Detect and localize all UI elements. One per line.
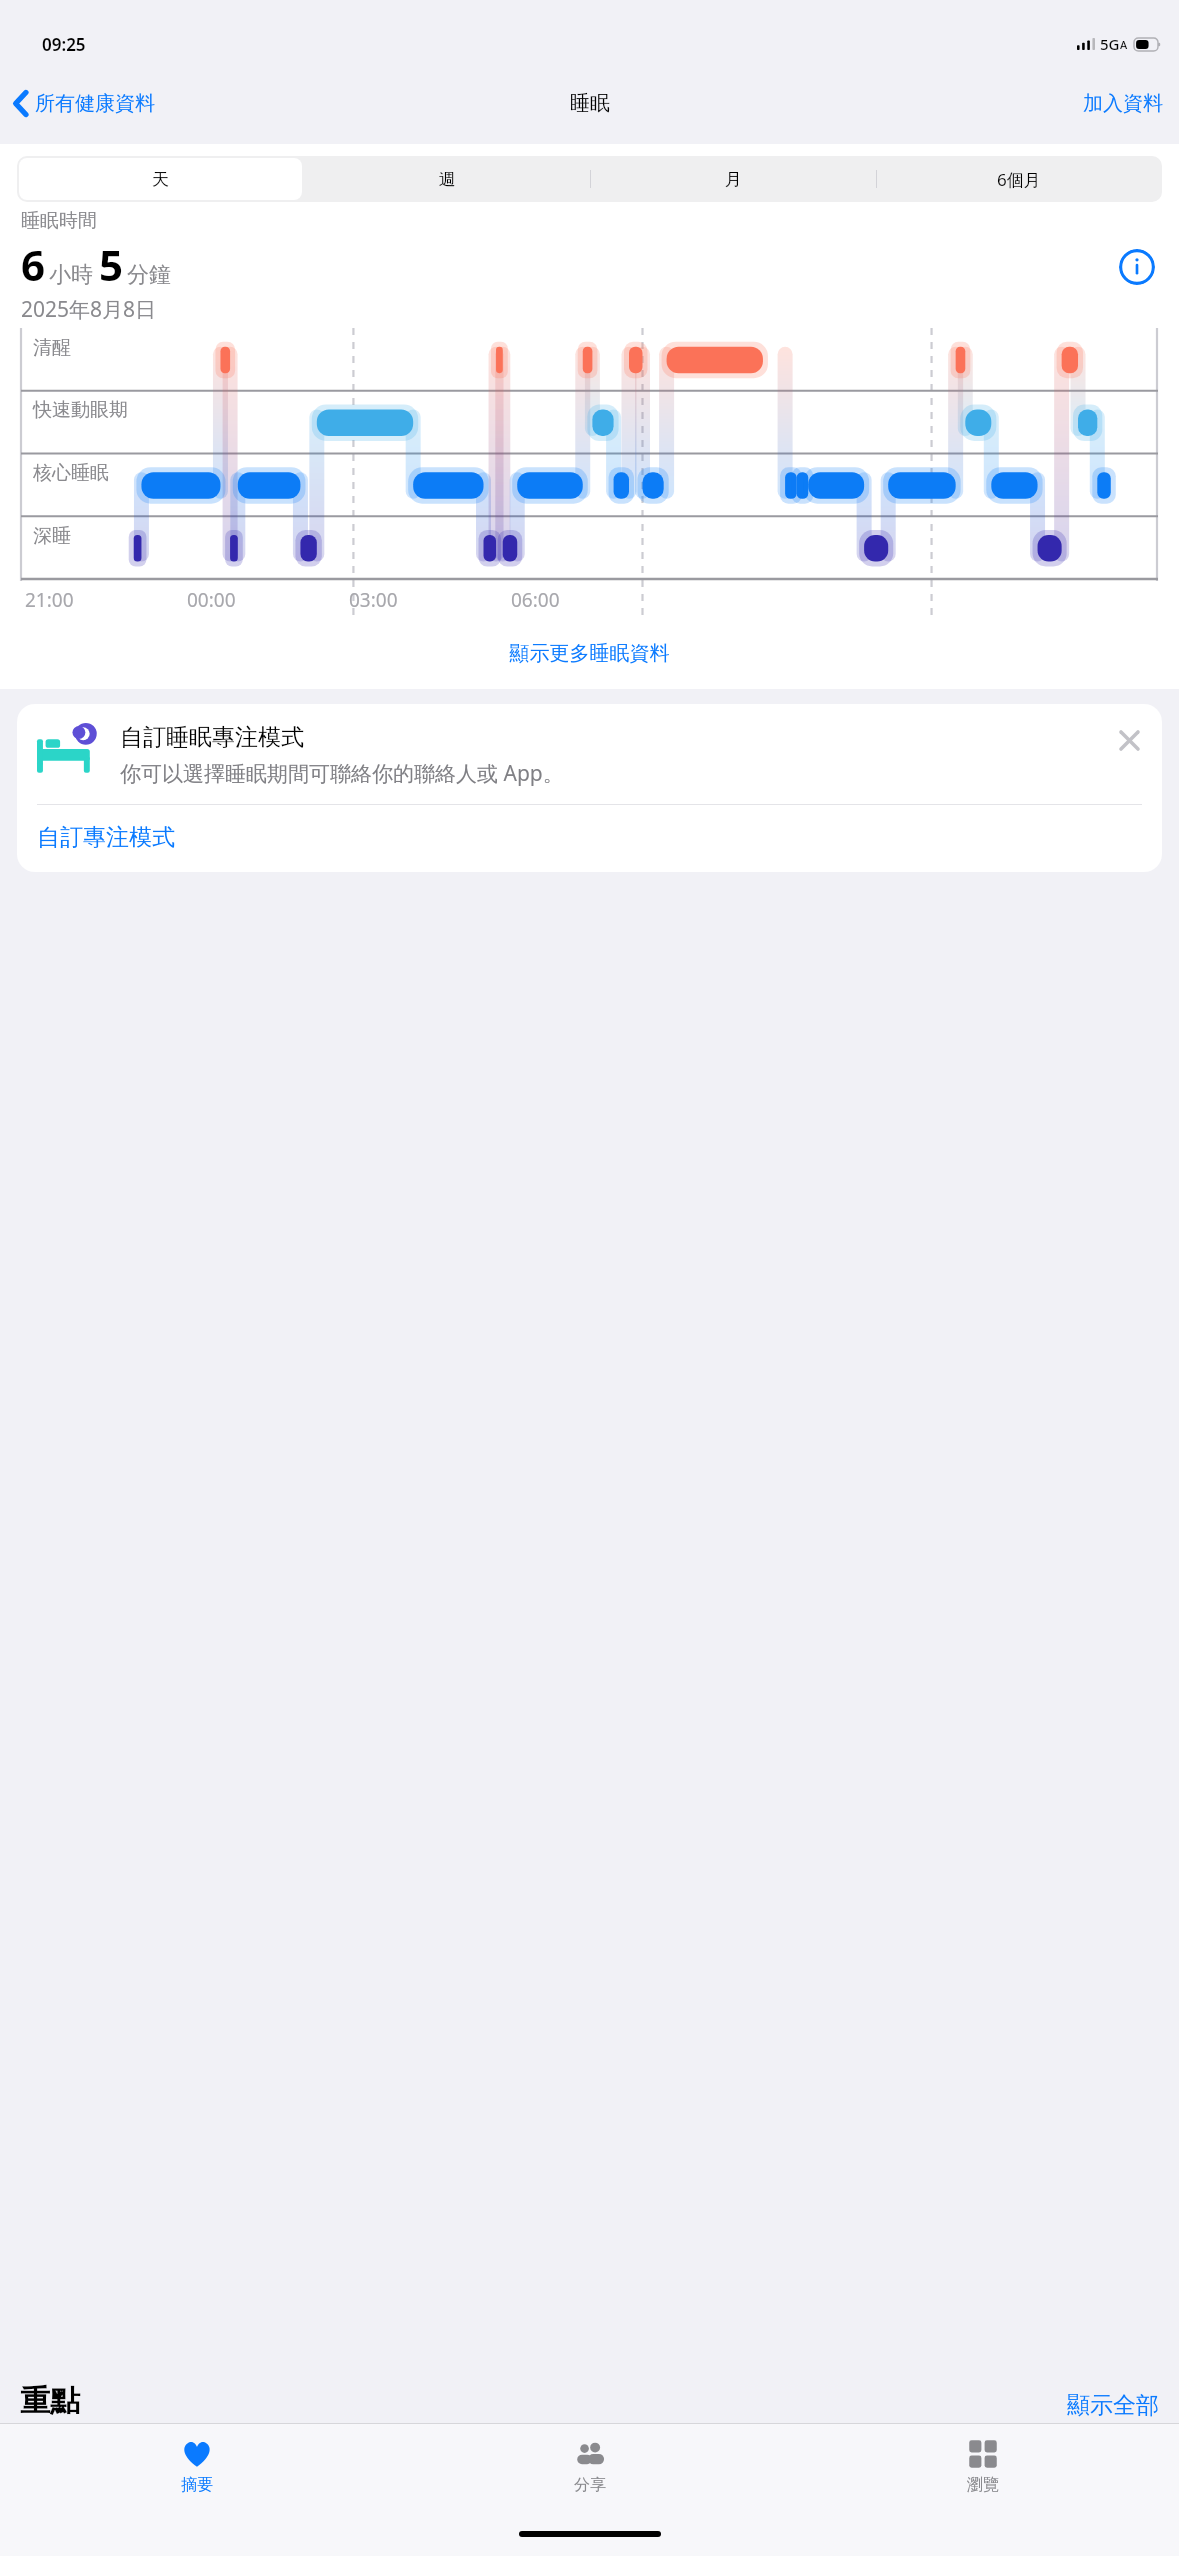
button[interactable]: 資訊	[1119, 249, 1155, 285]
staticText: 自訂睡眠專注模式	[120, 723, 304, 752]
staticText: 所有健康資料	[35, 91, 155, 116]
button[interactable]: 自訂睡眠專注模式	[17, 704, 1162, 872]
staticText: 分鐘	[127, 261, 171, 289]
staticText: 月	[725, 169, 742, 190]
staticText: A	[1120, 37, 1128, 52]
staticText: 00:00	[187, 587, 236, 613]
button[interactable]: 月	[590, 156, 876, 202]
staticText: 瀏覽	[967, 2475, 999, 2495]
button[interactable]: 摘要	[0, 2424, 393, 2522]
button[interactable]: 6個月	[876, 156, 1162, 202]
staticText: 摘要	[181, 2475, 213, 2495]
button[interactable]: 週	[304, 156, 590, 202]
staticText: 天	[152, 169, 169, 190]
staticText: 週	[439, 169, 456, 190]
staticText: 重點	[20, 2382, 1067, 2420]
button[interactable]: 加入資料	[1077, 87, 1169, 120]
staticText: 6個月	[997, 168, 1041, 191]
staticText: 核心睡眠	[33, 461, 109, 485]
staticText: 清醒	[33, 336, 71, 360]
button[interactable]: 天	[17, 156, 304, 202]
staticText: 5	[99, 236, 124, 293]
staticText: 21:00	[25, 587, 74, 613]
button[interactable]: 顯示全部	[1067, 2391, 1159, 2420]
staticText: 睡眠時間	[21, 209, 97, 233]
staticText: 2025年8月8日	[21, 295, 157, 324]
staticText: 5G	[1100, 34, 1120, 54]
staticText: 09:25	[42, 33, 86, 56]
staticText: 6	[21, 236, 46, 293]
staticText: 小時	[49, 261, 93, 289]
staticText: 06:00	[511, 587, 560, 613]
button[interactable]: 自訂專注模式	[17, 805, 1162, 872]
button[interactable]: 所有健康資料	[9, 87, 160, 120]
button[interactable]: 顯示更多睡眠資料	[0, 637, 1179, 670]
button[interactable]: 瀏覽	[786, 2424, 1179, 2522]
staticText: 睡眠	[570, 91, 610, 116]
staticText: 03:00	[349, 587, 398, 613]
button[interactable]: 關閉	[1112, 723, 1146, 757]
staticText: 快速動眼期	[33, 398, 128, 422]
staticText: 你可以選擇睡眠期間可聯絡你的聯絡人或 App。	[120, 759, 564, 788]
staticText: 深睡	[33, 524, 71, 548]
staticText: 分享	[574, 2475, 606, 2495]
button[interactable]: 分享	[393, 2424, 786, 2522]
